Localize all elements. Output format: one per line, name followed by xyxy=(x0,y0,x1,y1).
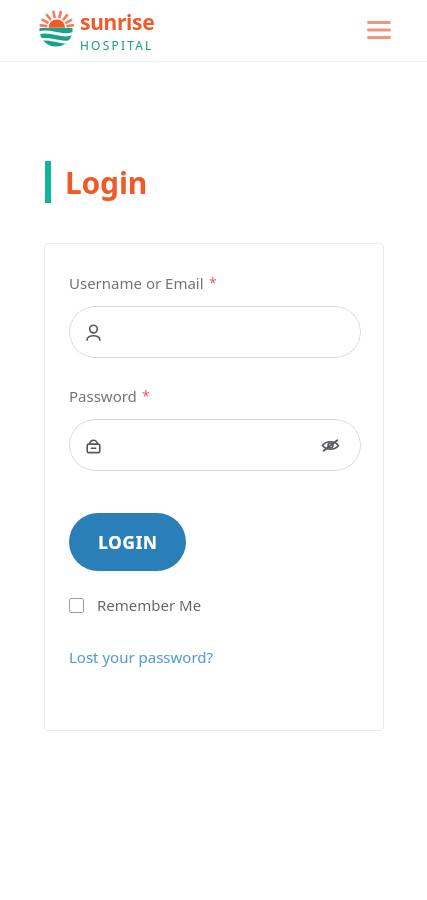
button[interactable]: Lost your password? xyxy=(69,647,214,667)
staticText: Password xyxy=(69,386,137,406)
staticText: * xyxy=(142,386,150,405)
button[interactable]: Show password xyxy=(69,419,361,471)
staticText: Username or Email xyxy=(69,273,204,293)
button[interactable]: Open menu xyxy=(359,10,399,50)
button[interactable]: Remember Me xyxy=(69,593,202,617)
staticText: Remember Me xyxy=(97,595,202,615)
staticText: * xyxy=(209,273,217,292)
button[interactable]: LOGIN xyxy=(69,513,186,571)
button[interactable] xyxy=(69,306,361,358)
staticText: HOSPITAL xyxy=(80,37,154,53)
staticText: sunrise xyxy=(80,8,155,37)
staticText: LOGIN xyxy=(98,531,158,554)
staticText: Login xyxy=(65,162,147,203)
button[interactable]: Show password xyxy=(315,430,345,460)
